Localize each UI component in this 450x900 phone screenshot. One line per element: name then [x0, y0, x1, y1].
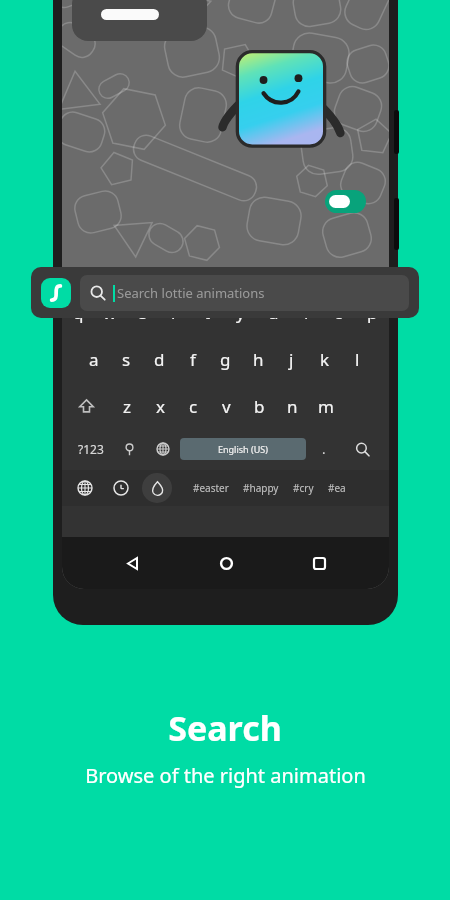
- button[interactable]: Trending: [142, 473, 172, 503]
- staticText: m: [318, 395, 334, 418]
- staticText: u: [268, 301, 279, 324]
- button[interactable]: .: [306, 432, 341, 466]
- staticText: 2: [115, 293, 120, 303]
- staticText: p: [367, 301, 378, 324]
- button[interactable]: Back: [109, 540, 155, 586]
- staticText: t: [204, 301, 211, 324]
- staticText: f: [190, 348, 196, 371]
- button[interactable]: Search: [341, 432, 383, 466]
- staticText: ?123: [78, 441, 104, 457]
- staticText: #cry: [293, 481, 314, 495]
- button[interactable]: #cry: [293, 481, 314, 495]
- staticText: a: [89, 348, 99, 371]
- button[interactable]: 2: [94, 288, 126, 332]
- button[interactable]: c: [177, 386, 210, 426]
- button[interactable]: 7: [257, 288, 290, 332]
- button[interactable]: x: [144, 386, 177, 426]
- button[interactable]: k: [308, 339, 341, 379]
- button[interactable]: 0: [356, 288, 389, 332]
- staticText: Search: [168, 705, 282, 751]
- button[interactable]: Emoji: [113, 432, 145, 466]
- button[interactable]: 8: [290, 288, 323, 332]
- staticText: y: [236, 301, 245, 324]
- button[interactable]: Recent: [106, 473, 136, 503]
- button[interactable]: Lottie: [41, 278, 71, 308]
- staticText: 4: [179, 293, 184, 303]
- button[interactable]: n: [276, 386, 309, 426]
- staticText: v: [222, 395, 231, 418]
- button[interactable]: s: [110, 339, 143, 379]
- button[interactable]: j: [275, 339, 308, 379]
- button[interactable]: m: [309, 386, 342, 426]
- button[interactable]: [72, 0, 207, 41]
- button[interactable]: g: [209, 339, 242, 379]
- button[interactable]: h: [242, 339, 275, 379]
- button[interactable]: Language: [70, 473, 100, 503]
- staticText: s: [122, 348, 131, 371]
- button[interactable]: ?123: [68, 432, 113, 466]
- staticText: c: [189, 395, 198, 418]
- button[interactable]: Toggle: [325, 190, 366, 213]
- staticText: e: [137, 301, 147, 324]
- staticText: #happy: [243, 481, 279, 495]
- staticText: k: [320, 348, 330, 371]
- staticText: q: [73, 301, 84, 324]
- button[interactable]: 5: [191, 288, 224, 332]
- button[interactable]: English (US): [180, 438, 306, 460]
- button[interactable]: Search lottie animations: [80, 275, 409, 311]
- staticText: i: [304, 301, 309, 324]
- staticText: g: [220, 348, 231, 371]
- staticText: n: [287, 395, 298, 418]
- button[interactable]: 3: [126, 288, 158, 332]
- staticText: h: [253, 348, 264, 371]
- button[interactable]: f: [176, 339, 209, 379]
- button[interactable]: z: [110, 386, 144, 426]
- staticText: #easter: [193, 481, 229, 495]
- staticText: #ea: [328, 481, 346, 495]
- button[interactable]: #happy: [243, 481, 279, 495]
- button[interactable]: d: [143, 339, 176, 379]
- button[interactable]: Lottie: [31, 267, 419, 318]
- staticText: z: [123, 395, 131, 418]
- staticText: 3: [147, 293, 152, 303]
- staticText: x: [156, 395, 165, 418]
- button[interactable]: 9: [323, 288, 356, 332]
- button[interactable]: a: [77, 339, 110, 379]
- button[interactable]: Language: [145, 432, 180, 466]
- staticText: o: [334, 301, 345, 324]
- staticText: b: [254, 395, 265, 418]
- staticText: w: [103, 301, 117, 324]
- button[interactable]: 4: [158, 288, 191, 332]
- staticText: English (US): [218, 443, 268, 455]
- staticText: .: [322, 440, 326, 458]
- staticText: Browse of the right animation: [85, 762, 366, 789]
- staticText: j: [289, 348, 294, 371]
- staticText: l: [355, 348, 360, 371]
- staticText: d: [154, 348, 165, 371]
- button[interactable]: #easter: [193, 481, 229, 495]
- button[interactable]: Shift: [62, 386, 110, 426]
- button[interactable]: l: [341, 339, 374, 379]
- button[interactable]: Home: [203, 540, 249, 586]
- button[interactable]: #ea: [328, 481, 346, 495]
- staticText: r: [171, 301, 179, 324]
- staticText: Search lottie animations: [117, 284, 265, 302]
- button[interactable]: 1: [62, 288, 94, 332]
- button[interactable]: 6: [224, 288, 257, 332]
- staticText: 5: [212, 293, 217, 303]
- staticText: 6: [245, 293, 250, 303]
- button[interactable]: b: [243, 386, 276, 426]
- button[interactable]: v: [210, 386, 243, 426]
- button[interactable]: Recent apps: [296, 540, 342, 586]
